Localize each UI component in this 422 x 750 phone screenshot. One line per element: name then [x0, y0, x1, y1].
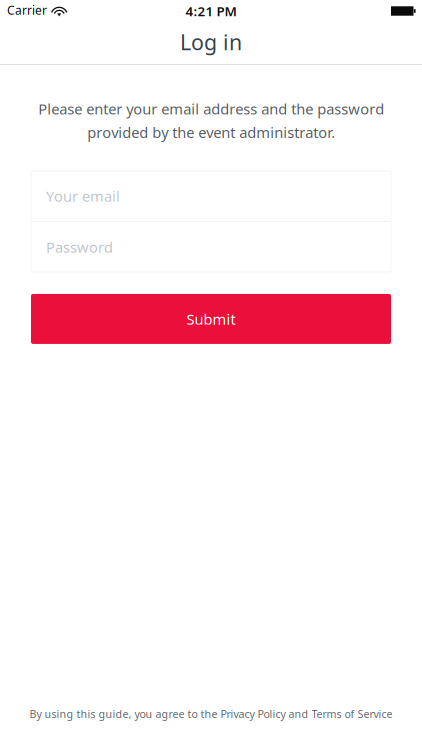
- staticText: Your email: [46, 186, 120, 206]
- button[interactable]: Terms of Service: [311, 707, 392, 721]
- staticText: Carrier: [7, 2, 47, 18]
- button[interactable]: Privacy Policy: [220, 707, 285, 721]
- button[interactable]: Password: [31, 222, 391, 272]
- button[interactable]: Your email: [31, 171, 391, 221]
- staticText: Privacy Policy: [220, 707, 285, 721]
- button[interactable]: Submit: [31, 294, 391, 344]
- staticText: Please enter your email address and the …: [38, 99, 384, 142]
- staticText: Submit: [186, 309, 235, 329]
- staticText: 4:21 PM: [185, 2, 236, 20]
- staticText: Password: [46, 237, 113, 257]
- staticText: By using this guide, you agree to the: [29, 707, 220, 721]
- staticText: and: [285, 707, 311, 721]
- staticText: Log in: [180, 28, 242, 56]
- staticText: Terms of Service: [311, 707, 392, 721]
